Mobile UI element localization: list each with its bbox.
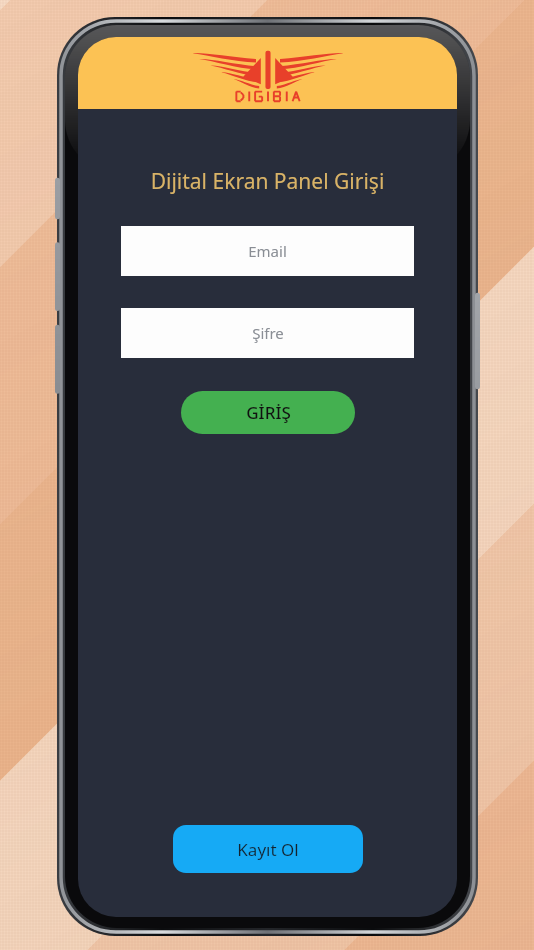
staticText: GİRİŞ xyxy=(246,401,291,424)
staticText: Şifre xyxy=(252,323,284,343)
button[interactable]: Şifre xyxy=(121,308,414,358)
button[interactable]: Kayıt Ol xyxy=(173,825,363,873)
button[interactable]: GİRİŞ xyxy=(181,391,355,434)
staticText: Kayıt Ol xyxy=(237,838,299,861)
staticText: Email xyxy=(248,241,287,261)
staticText: Dijital Ekran Panel Girişi xyxy=(78,167,457,196)
other: Digibia logo xyxy=(188,42,348,104)
button[interactable]: Email xyxy=(121,226,414,276)
